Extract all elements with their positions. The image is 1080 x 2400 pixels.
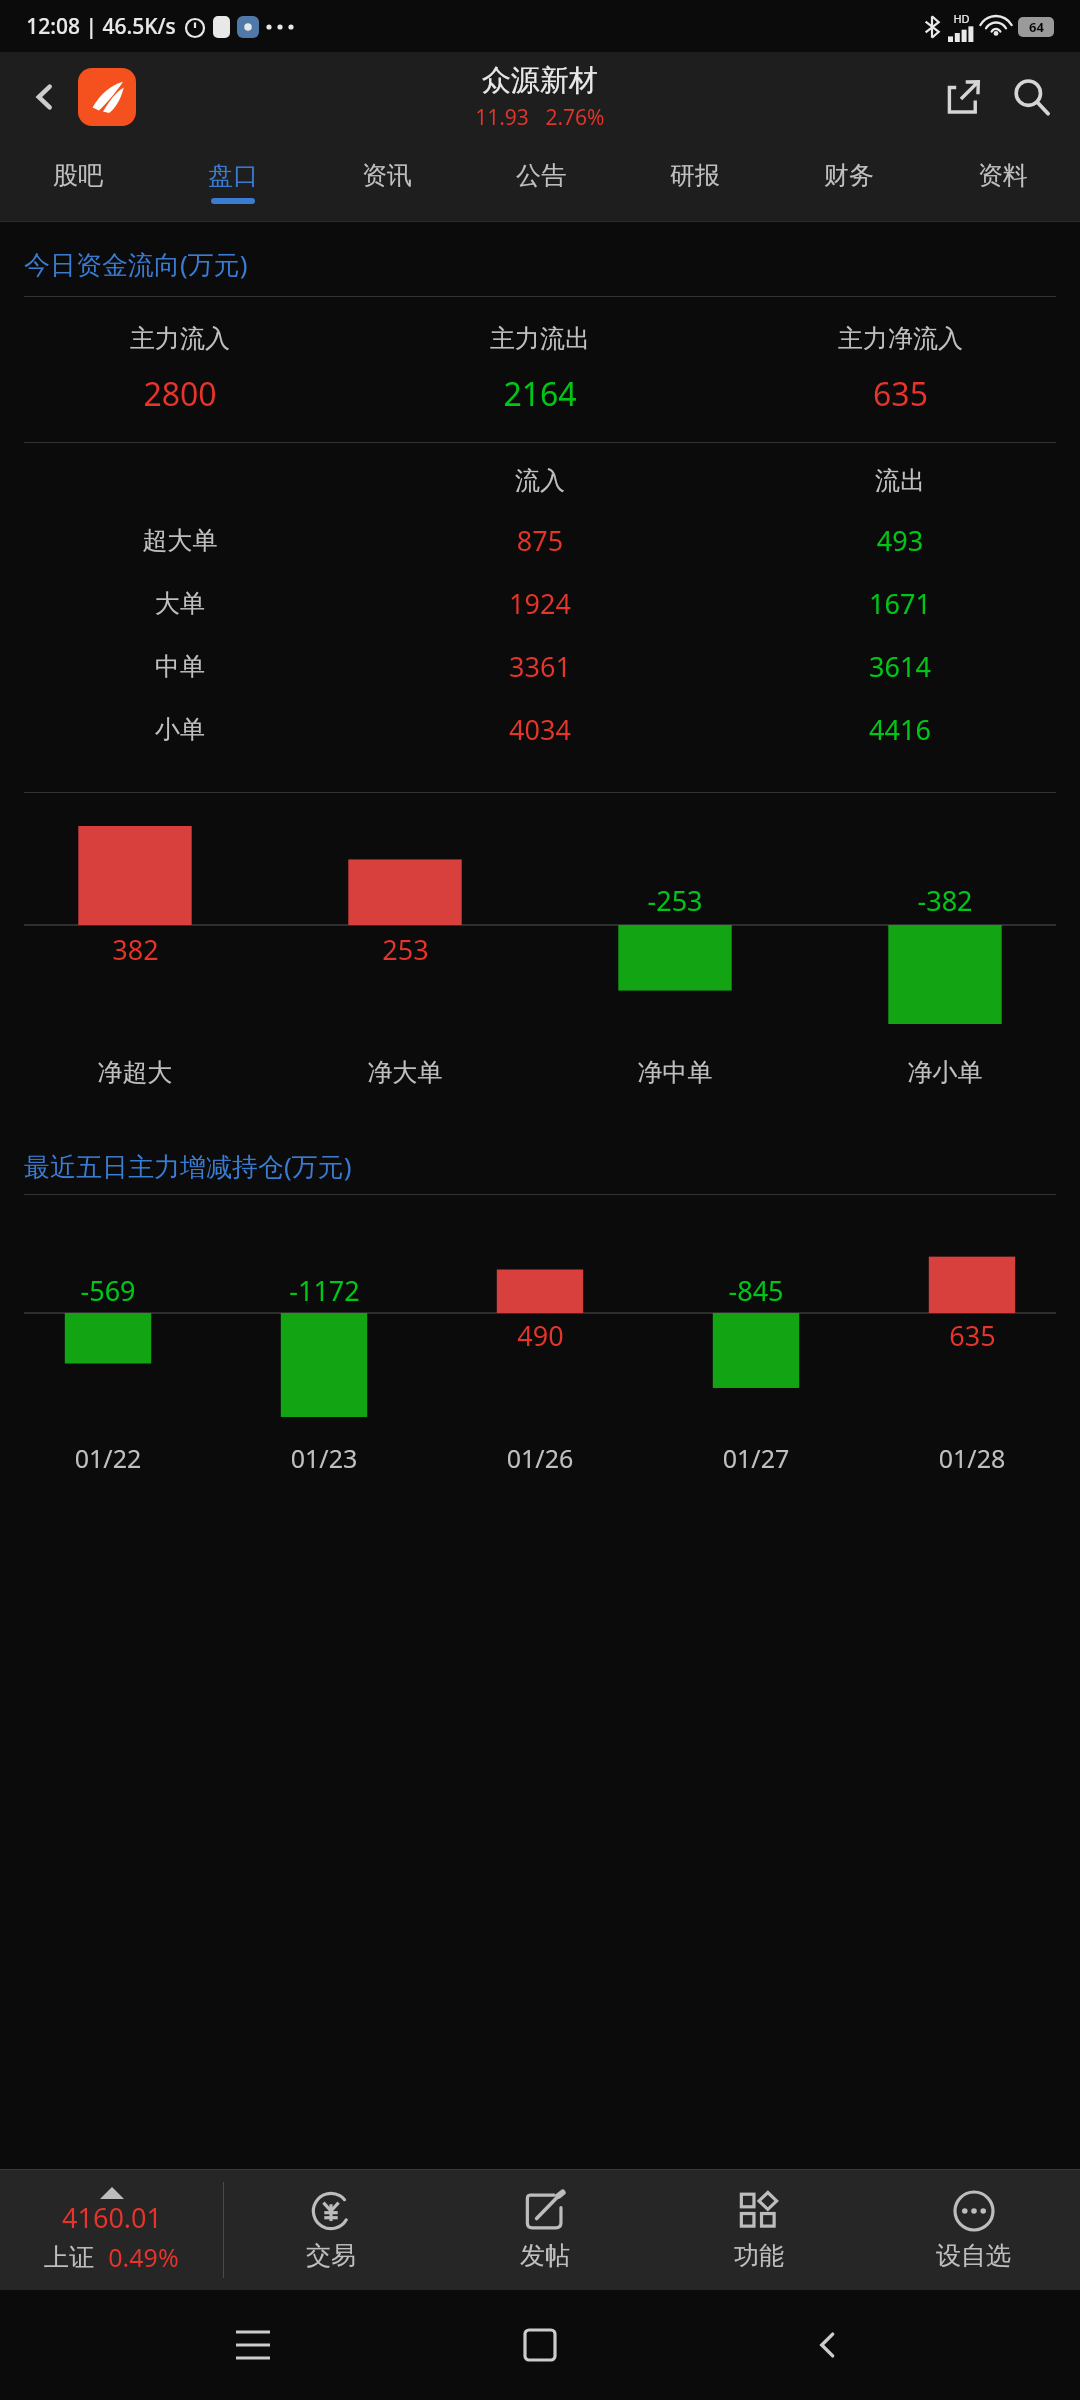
button[interactable]: Back: [18, 70, 72, 124]
button[interactable]: 盘口: [155, 142, 310, 222]
button[interactable]: Back: [793, 2310, 863, 2380]
staticText: 上证: [44, 2242, 94, 2273]
staticText: 今日资金流向(万元): [24, 246, 248, 282]
button[interactable]: 股吧: [0, 142, 155, 222]
staticText: 功能: [734, 2240, 784, 2271]
staticText: 设自选: [936, 2240, 1011, 2271]
staticText: 635: [873, 372, 928, 416]
button[interactable]: 超大单: [0, 522, 1080, 559]
staticText: -253: [647, 882, 703, 919]
staticText: 01/23: [216, 1441, 432, 1475]
staticText: 4160.01: [62, 2199, 162, 2236]
staticText: 11.93: [475, 103, 529, 132]
button[interactable]: 设自选: [866, 2170, 1080, 2290]
button[interactable]: 小单: [0, 711, 1080, 748]
staticText: 64: [1029, 18, 1044, 36]
staticText: 净小单: [810, 1057, 1080, 1088]
staticText: HD: [953, 11, 970, 26]
staticText: 净大单: [270, 1057, 540, 1088]
button[interactable]: App logo: [78, 68, 136, 126]
staticText: -1172: [289, 1272, 360, 1309]
staticText: 研报: [670, 160, 720, 191]
button[interactable]: 公告: [464, 142, 618, 222]
staticText: 875: [360, 522, 720, 559]
button[interactable]: 主力流入: [0, 323, 360, 416]
button[interactable]: 财务: [772, 142, 926, 222]
staticText: 3361: [360, 648, 720, 685]
button[interactable]: 中单: [0, 648, 1080, 685]
staticText: 4416: [720, 711, 1080, 748]
staticText: 382: [112, 931, 159, 968]
staticText: 盘口: [208, 160, 258, 191]
staticText: 资料: [978, 160, 1028, 191]
staticText: 中单: [0, 651, 360, 682]
staticText: 490: [517, 1317, 564, 1354]
button[interactable]: 主力流出: [360, 323, 720, 416]
staticText: 493: [720, 522, 1080, 559]
button[interactable]: 功能: [652, 2170, 866, 2290]
staticText: 主力净流入: [838, 323, 963, 354]
staticText: 交易: [306, 2240, 356, 2271]
button[interactable]: Home: [505, 2310, 575, 2380]
button[interactable]: 资料: [926, 142, 1080, 222]
staticText: -382: [917, 882, 973, 919]
staticText: 635: [949, 1317, 996, 1354]
button[interactable]: 研报: [618, 142, 772, 222]
staticText: 0.49%: [108, 2240, 179, 2274]
staticText: 财务: [824, 160, 874, 191]
button[interactable]: Search: [1000, 66, 1062, 128]
staticText: 2164: [503, 372, 577, 416]
button[interactable]: 交易: [224, 2170, 438, 2290]
staticText: 公告: [516, 160, 566, 191]
staticText: 2800: [143, 372, 217, 416]
button[interactable]: 资讯: [310, 142, 464, 222]
staticText: -569: [80, 1272, 136, 1309]
button[interactable]: 主力净流入: [720, 323, 1080, 416]
staticText: 众源新材: [482, 62, 598, 99]
staticText: 1671: [720, 585, 1080, 622]
staticText: 4034: [360, 711, 720, 748]
button[interactable]: 大单: [0, 585, 1080, 622]
staticText: 2.76%: [545, 103, 605, 132]
staticText: 253: [382, 931, 429, 968]
staticText: 大单: [0, 588, 360, 619]
staticText: 主力流入: [130, 323, 230, 354]
staticText: 资讯: [362, 160, 412, 191]
staticText: 3614: [720, 648, 1080, 685]
staticText: 超大单: [0, 525, 360, 556]
staticText: 小单: [0, 714, 360, 745]
staticText: 流出: [720, 465, 1080, 496]
staticText: 最近五日主力增减持仓(万元): [24, 1148, 352, 1184]
button[interactable]: Share: [932, 66, 994, 128]
staticText: 净超大: [0, 1057, 270, 1088]
staticText: -845: [728, 1272, 784, 1309]
button[interactable]: Menu: [218, 2310, 288, 2380]
staticText: 1924: [360, 585, 720, 622]
staticText: 主力流出: [490, 323, 590, 354]
staticText: 股吧: [53, 160, 103, 191]
staticText: 发帖: [520, 2240, 570, 2271]
staticText: 01/27: [648, 1441, 864, 1475]
staticText: 01/22: [0, 1441, 216, 1475]
button[interactable]: 4160.01: [0, 2170, 223, 2290]
staticText: 流入: [360, 465, 720, 496]
staticText: 01/28: [864, 1441, 1080, 1475]
staticText: 01/26: [432, 1441, 648, 1475]
staticText: 12:08 | 46.5K/s: [26, 12, 176, 41]
staticText: 净中单: [540, 1057, 810, 1088]
button[interactable]: 发帖: [438, 2170, 652, 2290]
